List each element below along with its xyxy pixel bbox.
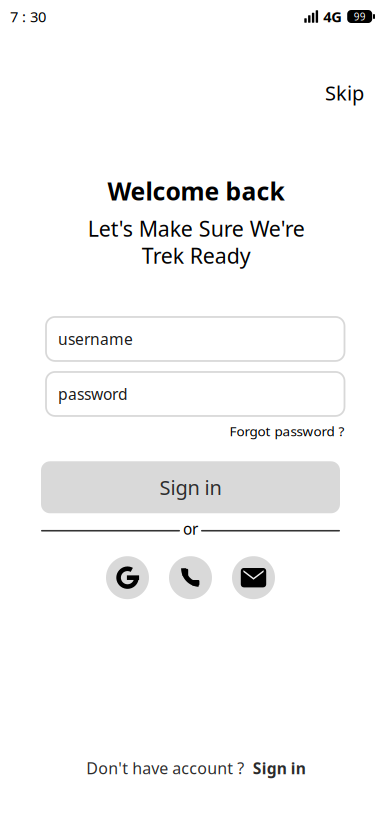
staticText: username <box>58 328 133 349</box>
staticText: Skip <box>325 79 364 106</box>
staticText: Sign in <box>253 757 306 779</box>
staticText: Let's Make Sure We're Trek Ready <box>87 214 304 270</box>
staticText: 99 <box>354 10 366 23</box>
staticText: 7 : 30 <box>10 6 46 26</box>
staticText: Welcome back <box>107 174 284 208</box>
staticText: password <box>58 383 128 404</box>
button[interactable]: Continue with Google <box>106 556 149 599</box>
staticText: Forgot password ? <box>229 422 344 440</box>
button[interactable]: Sign in <box>41 461 340 513</box>
button[interactable]: password <box>46 372 344 416</box>
button[interactable]: Skip <box>318 74 371 111</box>
staticText: or <box>183 518 198 539</box>
staticText: Don't have account ? <box>86 757 244 779</box>
button[interactable]: Forgot password ? <box>229 419 344 443</box>
staticText: Sign in <box>159 474 221 501</box>
button[interactable]: Continue with phone number <box>169 556 212 599</box>
staticText: 4G <box>323 6 342 26</box>
button[interactable]: Continue with email <box>232 556 275 599</box>
button[interactable]: Sign in <box>253 757 306 779</box>
button[interactable]: username <box>46 317 344 361</box>
